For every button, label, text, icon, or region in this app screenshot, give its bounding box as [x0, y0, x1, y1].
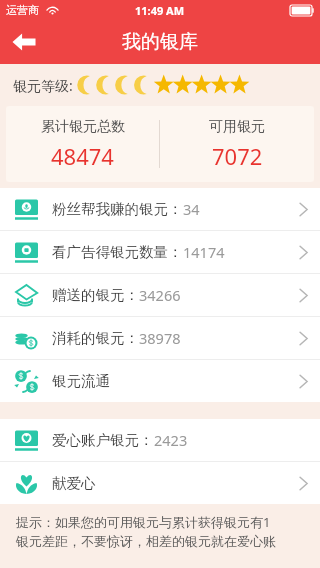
staticText: 48474: [51, 141, 114, 171]
staticText: 消耗的银元：: [52, 329, 139, 347]
staticText: 看广告得银元数量：: [52, 243, 183, 261]
staticText: 爱心账户银元：: [52, 431, 154, 449]
staticText: 14174: [183, 242, 225, 262]
staticText: 7072: [212, 141, 263, 171]
button[interactable]: 粉丝帮我赚的银元：: [0, 188, 320, 230]
staticText: 献爱心: [52, 474, 96, 492]
button[interactable]: 看广告得银元数量：: [0, 231, 320, 273]
button[interactable]: Back: [0, 20, 48, 64]
staticText: 34: [183, 199, 200, 219]
staticText: 运营商: [6, 3, 39, 17]
button[interactable]: 银元流通: [0, 360, 320, 402]
staticText: 可用银元: [209, 118, 265, 136]
staticText: 银元流通: [52, 372, 110, 390]
staticText: 累计银元总数: [41, 118, 125, 136]
button[interactable]: 消耗的银元：: [0, 317, 320, 359]
button[interactable]: 爱心账户银元：: [0, 419, 320, 461]
staticText: 粉丝帮我赚的银元：: [52, 200, 183, 218]
staticText: 银元等级:: [13, 76, 73, 95]
button[interactable]: 赠送的银元：: [0, 274, 320, 316]
staticText: 提示：如果您的可用银元与累计获得银元有1: [16, 513, 271, 531]
staticText: 赠送的银元：: [52, 286, 139, 304]
staticText: 34266: [139, 285, 181, 305]
staticText: 我的银库: [122, 30, 198, 54]
staticText: 38978: [139, 328, 181, 348]
staticText: 2423: [154, 430, 188, 450]
button[interactable]: 献爱心: [0, 462, 320, 504]
staticText: 银元差距，不要惊讶，相差的银元就在爱心账: [16, 533, 276, 549]
staticText: 11:49 AM: [135, 3, 185, 18]
